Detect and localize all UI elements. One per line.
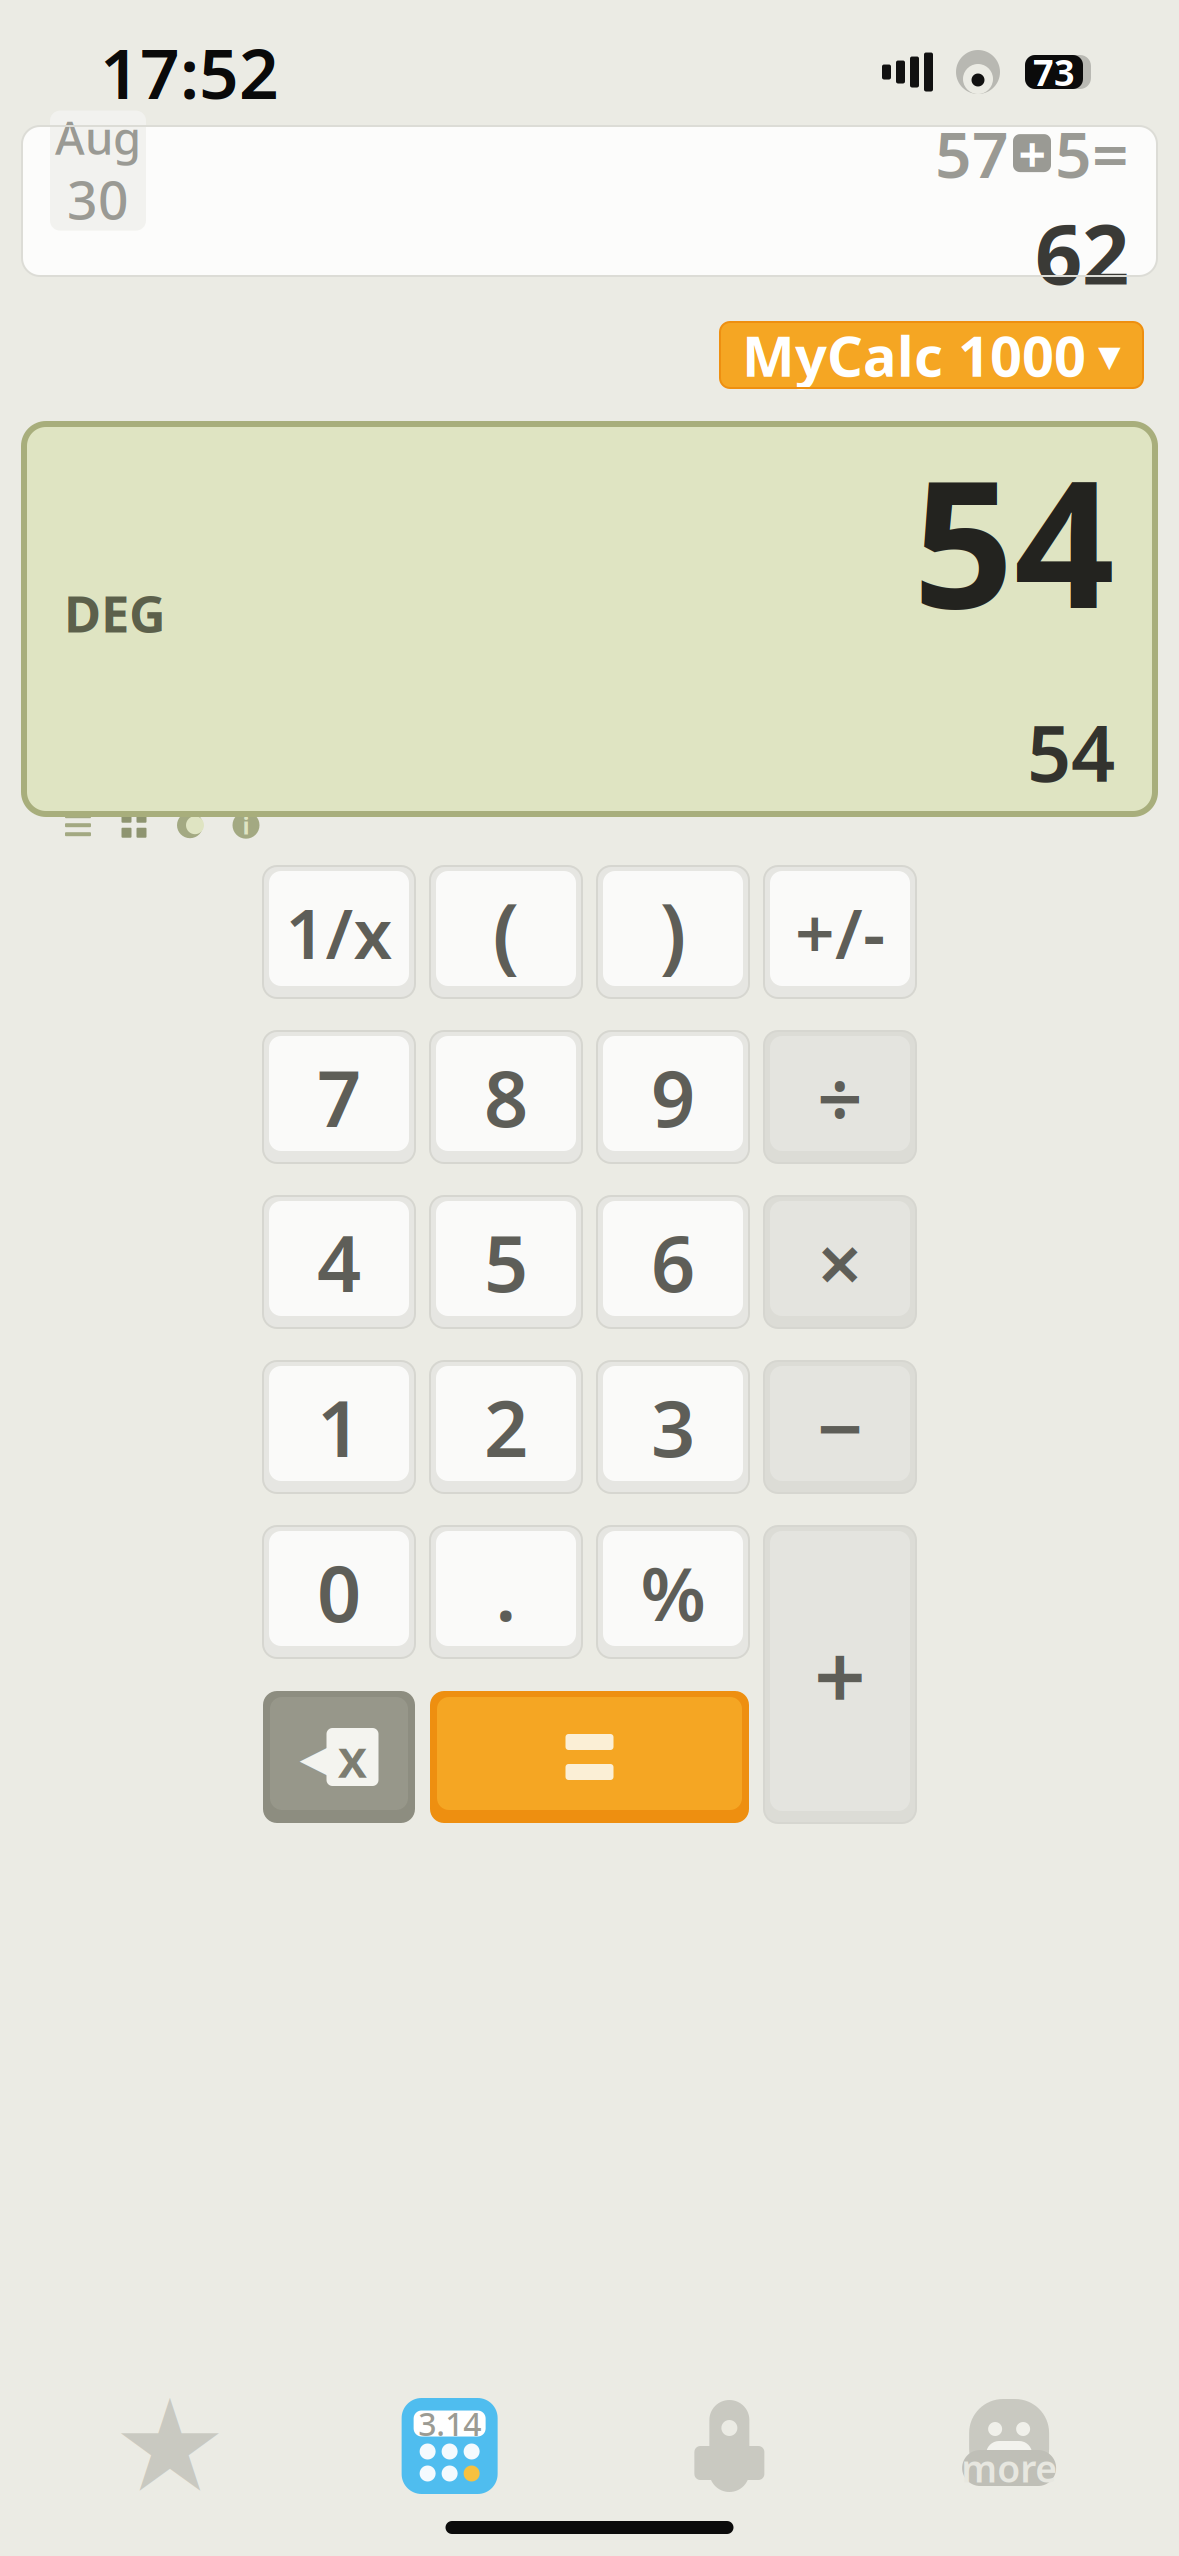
staticText: 5 [484, 1211, 528, 1313]
staticText: 54 [1027, 700, 1115, 803]
staticText: 1/x [285, 886, 392, 978]
button[interactable]: . [430, 1526, 582, 1658]
staticText: ★ [112, 2373, 227, 2519]
staticText: 62 [1035, 198, 1129, 307]
button[interactable]: 3 [597, 1361, 749, 1493]
button[interactable]: 8 [430, 1031, 582, 1163]
staticText: 5= [1055, 111, 1129, 196]
staticText: MyCalc 1000 [742, 318, 1086, 392]
button[interactable]: Favorites [30, 2391, 310, 2501]
button[interactable]: Equals [430, 1691, 749, 1823]
button[interactable]: Convert [589, 2391, 869, 2501]
staticText: × [817, 1209, 863, 1315]
staticText: ▾ [1098, 329, 1121, 381]
staticText: + [1018, 121, 1045, 185]
staticText: 9 [651, 1046, 695, 1148]
button[interactable]: 7 [263, 1031, 415, 1163]
button[interactable]: ) [597, 866, 749, 998]
staticText: 7 [317, 1046, 361, 1148]
staticText: x [337, 1722, 367, 1792]
button[interactable]: 1/x [263, 866, 415, 998]
staticText: 3 [651, 1376, 695, 1478]
staticText: 54 [913, 423, 1115, 656]
staticText: 4 [317, 1211, 361, 1313]
staticText: % [640, 1542, 705, 1642]
button[interactable]: ÷ [764, 1031, 916, 1163]
button[interactable]: ( [430, 866, 582, 998]
staticText: DEG [64, 579, 166, 646]
button[interactable]: − [764, 1361, 916, 1493]
staticText: + [814, 1614, 866, 1735]
button[interactable]: + [764, 1526, 916, 1823]
staticText: i [242, 809, 249, 841]
staticText: Aug [55, 107, 141, 167]
staticText: 2 [484, 1376, 528, 1478]
staticText: − [817, 1374, 863, 1480]
staticText: +/- [795, 886, 885, 978]
button[interactable]: % [597, 1526, 749, 1658]
staticText: 17:52 [100, 26, 279, 118]
button[interactable]: 5 [430, 1196, 582, 1328]
button[interactable]: Backspace [263, 1691, 415, 1823]
staticText: ) [659, 877, 686, 987]
button[interactable]: Aug [0, 126, 1179, 276]
button[interactable]: Calculator [310, 2391, 590, 2501]
button[interactable]: MyCalc 1000 [720, 322, 1143, 388]
staticText: 30 [67, 163, 129, 234]
button[interactable]: 9 [597, 1031, 749, 1163]
button[interactable]: More [869, 2391, 1149, 2501]
button[interactable]: 0 [263, 1526, 415, 1658]
button[interactable]: 2 [430, 1361, 582, 1493]
button[interactable]: 4 [263, 1196, 415, 1328]
staticText: 3.14 [418, 2402, 481, 2445]
button[interactable]: 1 [263, 1361, 415, 1493]
staticText: . [495, 1542, 516, 1642]
staticText: 57 [935, 111, 1009, 196]
button[interactable]: +/- [764, 866, 916, 998]
staticText: more [961, 2443, 1057, 2493]
staticText: ÷ [817, 1044, 863, 1150]
staticText: ◀ [299, 1727, 340, 1787]
staticText: 73 [1033, 48, 1075, 96]
staticText: ( [492, 877, 519, 987]
button[interactable]: × [764, 1196, 916, 1328]
staticText: 0 [317, 1541, 361, 1643]
staticText: 6 [651, 1211, 695, 1313]
staticText: 8 [484, 1046, 528, 1148]
button[interactable]: 6 [597, 1196, 749, 1328]
staticText: 1 [317, 1376, 361, 1478]
